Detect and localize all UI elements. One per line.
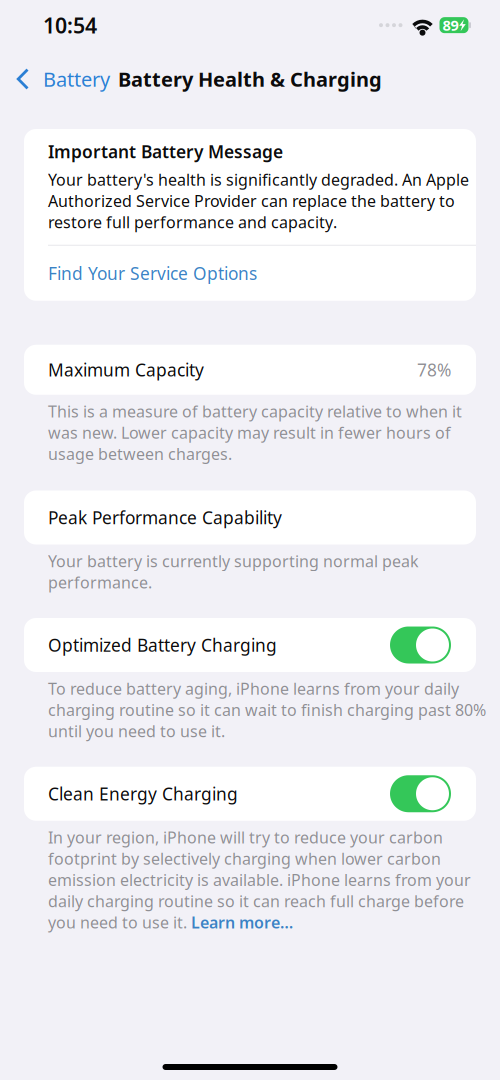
button[interactable]: Peak Performance Capability — [24, 490, 476, 544]
button[interactable]: Clean Energy Charging — [24, 767, 476, 821]
staticText: Learn more… — [191, 912, 293, 933]
staticText: Find Your Service Options — [48, 262, 257, 285]
staticText: emission electricity is available. iPhon… — [48, 869, 471, 890]
staticText: Maximum Capacity — [48, 358, 204, 381]
button[interactable]: Learn more… — [191, 912, 293, 933]
staticText: until you need to use it. — [48, 720, 225, 742]
staticText: 89 — [442, 15, 458, 35]
button[interactable]: Optimized Battery Charging — [24, 618, 476, 672]
staticText: charging routine so it can wait to finis… — [48, 699, 486, 720]
staticText: was new. Lower capacity may result in fe… — [48, 422, 451, 443]
staticText: daily charging routine so it can reach f… — [48, 890, 464, 912]
staticText: footprint by selectively charging when l… — [48, 848, 441, 869]
staticText: 10:54 — [43, 11, 97, 39]
staticText: you need to use it. — [48, 912, 191, 933]
button[interactable]: Find Your Service Options — [48, 246, 476, 301]
staticText: Your battery is currently supporting nor… — [48, 550, 419, 572]
staticText: Clean Energy Charging — [48, 782, 238, 805]
staticText: Important Battery Message — [48, 140, 283, 163]
staticText: performance. — [48, 572, 152, 593]
staticText: In your region, iPhone will try to reduc… — [48, 827, 443, 848]
staticText: Your battery's health is significantly d… — [48, 169, 469, 233]
staticText: Battery Health & Charging — [118, 66, 382, 92]
button[interactable]: Battery — [0, 60, 114, 98]
staticText: Optimized Battery Charging — [48, 633, 277, 656]
staticText: Peak Performance Capability — [48, 506, 282, 529]
staticText: usage between charges. — [48, 443, 232, 464]
staticText: To reduce battery aging, iPhone learns f… — [48, 678, 459, 699]
button[interactable]: Maximum Capacity — [24, 345, 476, 395]
staticText: 78% — [417, 358, 451, 381]
staticText: This is a measure of battery capacity re… — [48, 401, 462, 422]
staticText: Battery — [43, 66, 110, 92]
